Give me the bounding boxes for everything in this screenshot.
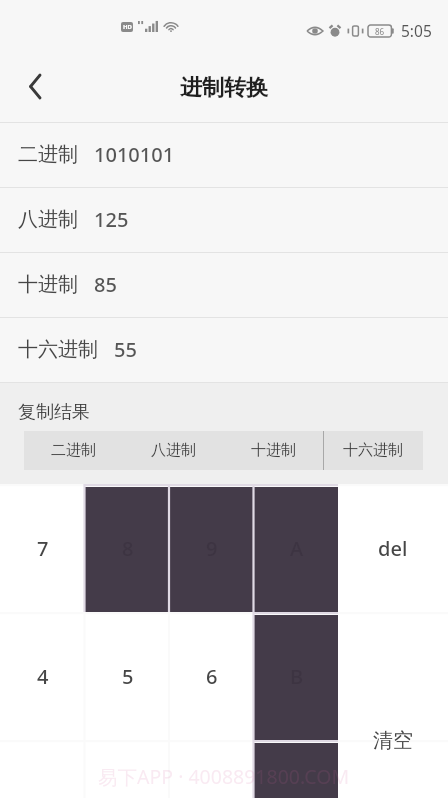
button[interactable]: 八进制 bbox=[0, 187, 448, 252]
button[interactable]: del bbox=[338, 484, 448, 612]
staticText: HD bbox=[123, 23, 132, 31]
button[interactable]: 5 bbox=[85, 612, 170, 740]
button[interactable]: 清空 bbox=[338, 612, 448, 798]
staticText: 八进制 bbox=[18, 207, 78, 232]
staticText: 85 bbox=[94, 271, 117, 298]
button[interactable]: 4 bbox=[0, 612, 85, 740]
button[interactable]: 2 bbox=[85, 740, 170, 798]
staticText: 6 bbox=[206, 663, 218, 690]
staticText: 86 bbox=[375, 26, 385, 37]
button[interactable]: 8 bbox=[85, 484, 170, 612]
staticText: 十进制 bbox=[251, 441, 296, 460]
button[interactable]: 6 bbox=[169, 612, 254, 740]
button[interactable]: 十进制 bbox=[223, 431, 323, 470]
staticText: 125 bbox=[94, 206, 129, 233]
button[interactable]: 八进制 bbox=[123, 431, 223, 470]
button[interactable]: B bbox=[254, 612, 339, 740]
staticText: 二进制 bbox=[18, 142, 78, 167]
button[interactable]: Back bbox=[15, 66, 55, 106]
button[interactable]: 7 bbox=[0, 484, 85, 612]
staticText: 八进制 bbox=[151, 441, 196, 460]
staticText: 5:05 bbox=[401, 20, 432, 41]
staticText: 55 bbox=[114, 336, 137, 363]
button[interactable]: A bbox=[254, 484, 339, 612]
button[interactable]: 二进制 bbox=[0, 122, 448, 187]
staticText: 4 bbox=[37, 663, 49, 690]
staticText: 复制结果 bbox=[18, 401, 90, 424]
button[interactable]: 二进制 bbox=[24, 431, 123, 470]
staticText: 易下APP · 4008891800.COM bbox=[98, 763, 350, 790]
staticText: 进制转换 bbox=[180, 74, 268, 102]
staticText: 十六进制 bbox=[18, 337, 98, 362]
staticText: 二进制 bbox=[51, 441, 96, 460]
staticText: 十六进制 bbox=[343, 441, 403, 460]
staticText: 7 bbox=[37, 535, 49, 562]
staticText: 清空 bbox=[373, 728, 413, 753]
staticText: 5 bbox=[122, 663, 134, 690]
button[interactable]: 3 bbox=[169, 740, 254, 798]
staticText: 十进制 bbox=[18, 272, 78, 297]
button[interactable]: 十进制 bbox=[0, 252, 448, 317]
staticText: 1010101 bbox=[94, 141, 175, 168]
button[interactable]: 十六进制 bbox=[323, 431, 423, 470]
button[interactable]: C bbox=[254, 740, 339, 798]
button[interactable]: 十六进制 bbox=[0, 317, 448, 382]
staticText: del bbox=[378, 535, 408, 562]
button[interactable]: 9 bbox=[169, 484, 254, 612]
